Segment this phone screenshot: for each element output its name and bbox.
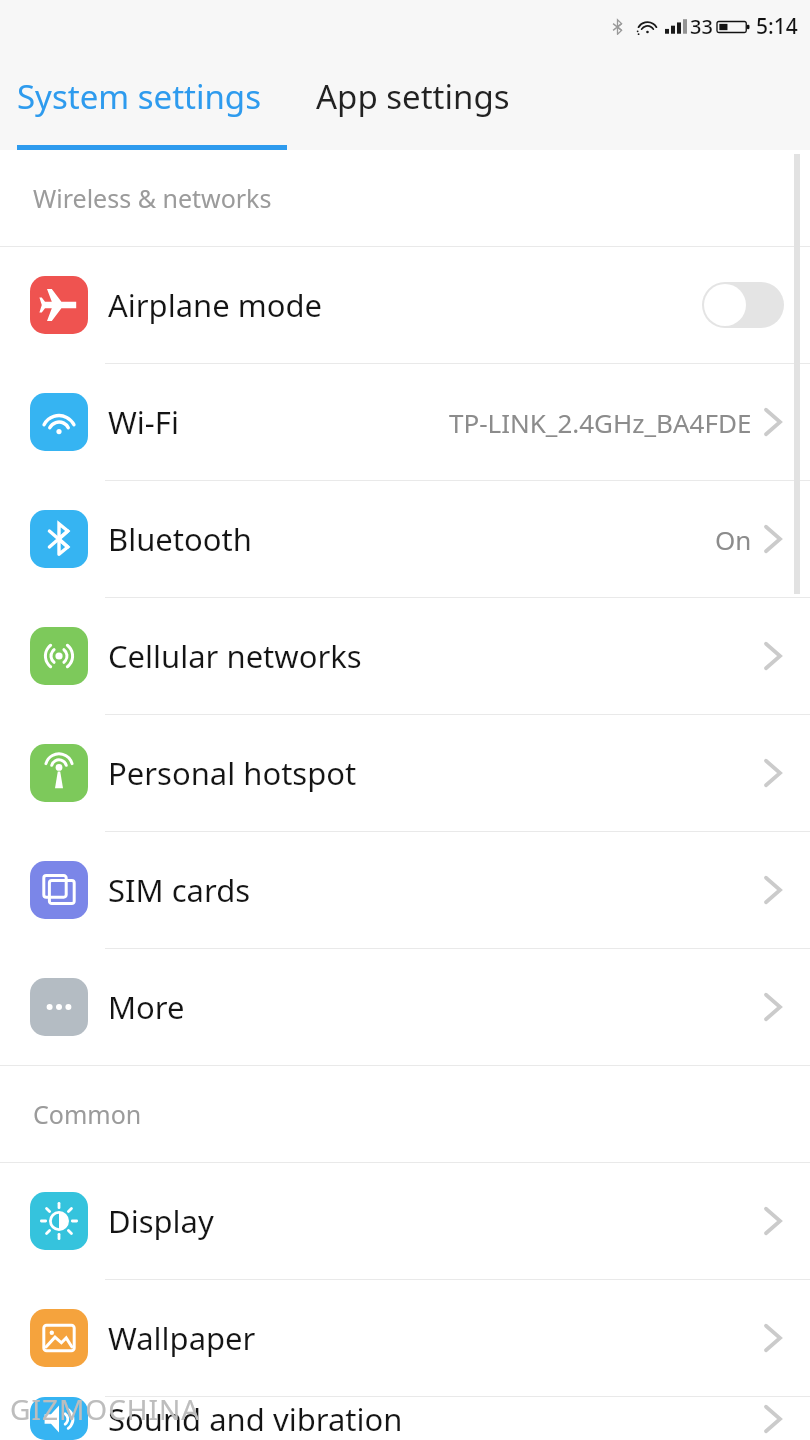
button[interactable]: More: [0, 949, 810, 1065]
staticText: Airplane mode: [108, 284, 323, 326]
staticText: Wi-Fi: [108, 401, 179, 443]
staticText: Wireless & networks: [33, 181, 272, 215]
staticText: 5:14: [756, 12, 798, 41]
staticText: SIM cards: [108, 869, 251, 911]
staticText: Sound and vibration: [108, 1398, 403, 1440]
button[interactable]: Bluetooth: [0, 481, 810, 597]
staticText: GIZMOCHINA: [10, 1390, 201, 1428]
button[interactable]: Airplane mode toggle: [702, 282, 784, 328]
staticText: App settings: [316, 74, 510, 119]
staticText: System settings: [17, 74, 261, 119]
staticText: Common: [33, 1097, 142, 1131]
staticText: On: [715, 522, 752, 557]
button[interactable]: Airplane mode: [0, 247, 810, 363]
button[interactable]: Personal hotspot: [0, 715, 810, 831]
staticText: TP-LINK_2.4GHz_BA4FDE: [449, 405, 752, 440]
staticText: Display: [108, 1200, 214, 1242]
button[interactable]: Sound and vibration: [0, 1397, 810, 1440]
staticText: 33: [690, 13, 713, 40]
staticText: Bluetooth: [108, 518, 252, 560]
button[interactable]: Wi-Fi: [0, 364, 810, 480]
button[interactable]: SIM cards: [0, 832, 810, 948]
button[interactable]: App settings: [304, 52, 584, 150]
button[interactable]: Display: [0, 1163, 810, 1279]
button[interactable]: Wallpaper: [0, 1280, 810, 1396]
button[interactable]: System settings: [0, 52, 304, 150]
staticText: Cellular networks: [108, 635, 362, 677]
staticText: More: [108, 986, 185, 1028]
staticText: Personal hotspot: [108, 752, 357, 794]
button[interactable]: Cellular networks: [0, 598, 810, 714]
staticText: Wallpaper: [108, 1317, 256, 1359]
